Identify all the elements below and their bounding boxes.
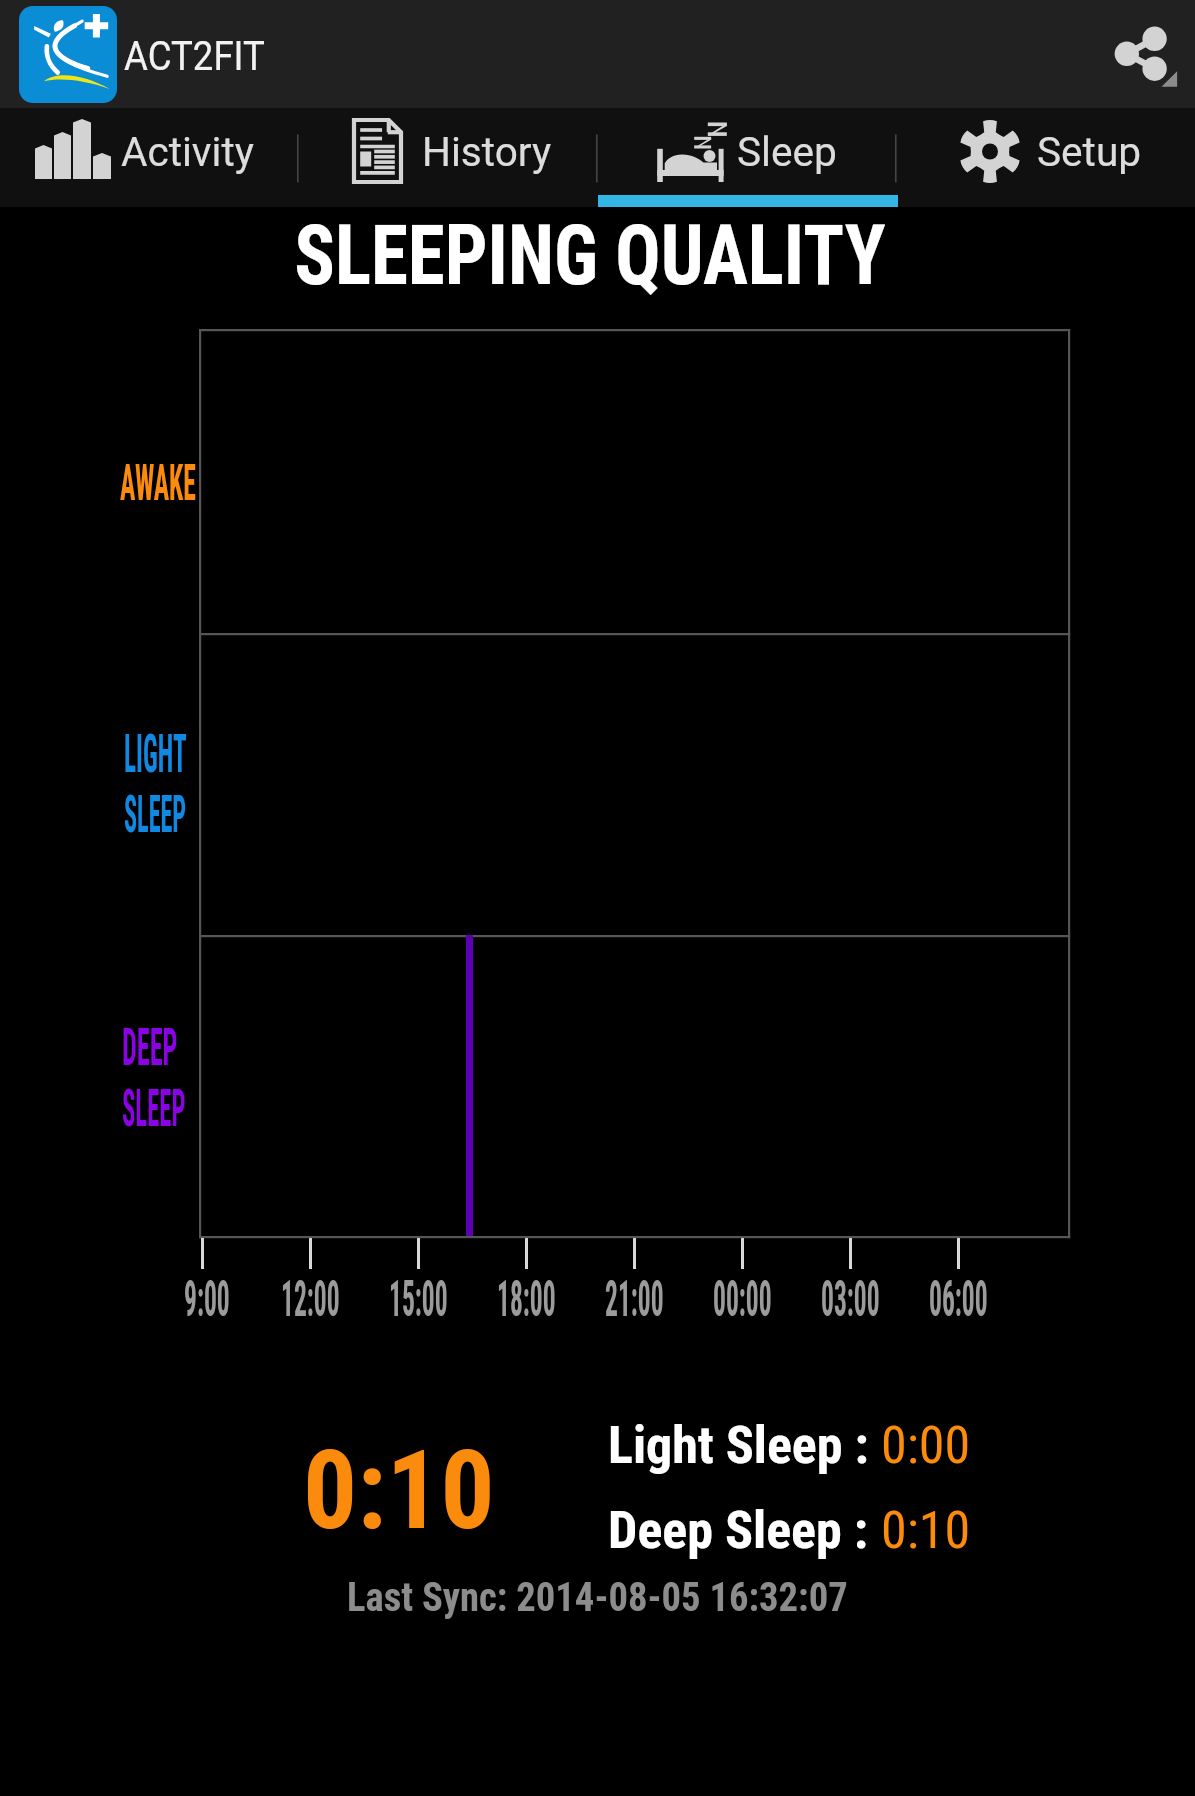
staticText: 12:00 — [281, 1270, 340, 1329]
staticText: 15:00 — [389, 1270, 448, 1329]
staticText: 18:00 — [497, 1270, 556, 1329]
staticText: 03:00 — [821, 1270, 880, 1329]
button[interactable]: Sleep — [598, 108, 897, 207]
staticText: 06:00 — [929, 1270, 988, 1329]
staticText: ACT2FIT — [124, 33, 265, 80]
staticText: SLEEP — [124, 784, 186, 845]
staticText: History — [422, 128, 552, 176]
staticText: LIGHT — [124, 723, 187, 785]
button[interactable]: Setup — [897, 108, 1195, 207]
button[interactable]: Activity — [0, 108, 299, 207]
staticText: 0:00 — [881, 1415, 971, 1476]
staticText: Setup — [1037, 128, 1142, 176]
staticText: 9:00 — [184, 1270, 230, 1329]
staticText: Deep Sleep : — [608, 1500, 880, 1561]
staticText: 21:00 — [605, 1270, 664, 1329]
staticText: Sleep — [737, 128, 837, 176]
staticText: SLEEP — [122, 1078, 186, 1139]
button[interactable]: Share — [1102, 8, 1195, 100]
button[interactable]: History — [299, 108, 598, 207]
staticText: SLEEPING QUALITY — [294, 207, 886, 305]
staticText: Light Sleep : — [608, 1415, 881, 1476]
staticText: 0:10 — [881, 1500, 971, 1561]
staticText: Activity — [121, 128, 255, 176]
staticText: Last Sync: 2014-08-05 16:32:07 — [347, 1574, 848, 1621]
staticText: AWAKE — [120, 454, 196, 513]
staticText: 0:10 — [303, 1427, 495, 1554]
staticText: 00:00 — [713, 1270, 772, 1329]
staticText: DEEP — [122, 1017, 178, 1078]
button[interactable]: ACT2FIT logo — [19, 6, 117, 103]
